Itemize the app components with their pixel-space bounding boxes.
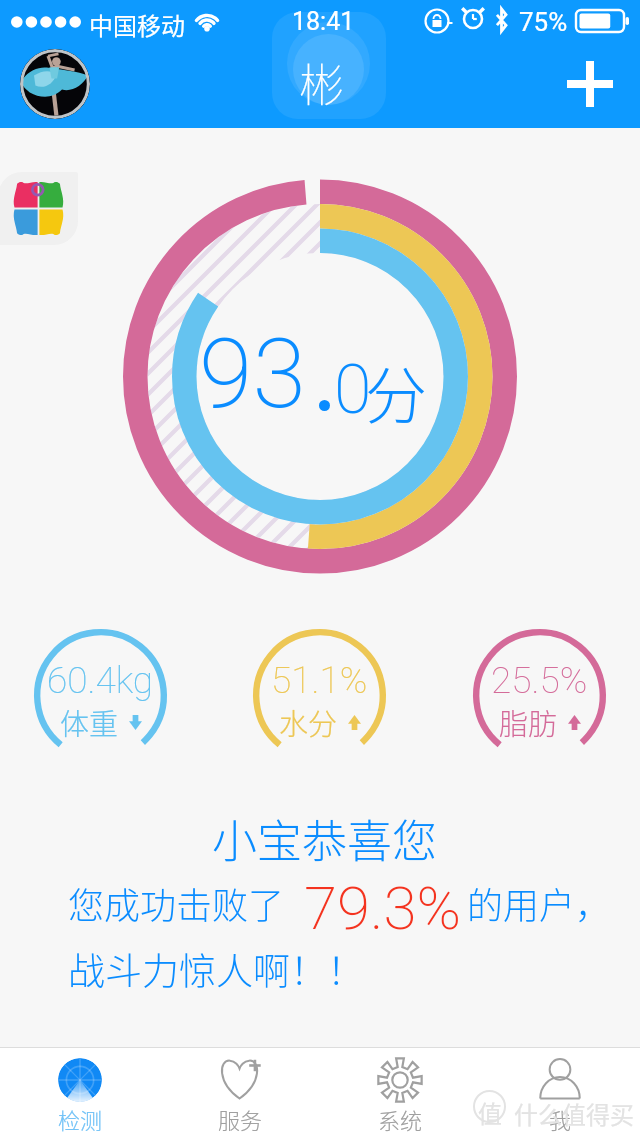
staticText: 体重	[60, 701, 119, 743]
staticText: 60.4kg	[47, 659, 154, 702]
button[interactable]: 彬	[272, 12, 386, 119]
button[interactable]: Brand logo	[0, 172, 78, 245]
staticText: 什么值得买	[514, 1096, 634, 1131]
staticText: 0	[334, 350, 372, 430]
staticText: 战斗力惊人啊！！	[68, 942, 364, 996]
staticText: 75%	[519, 7, 568, 37]
staticText: 的用户，	[467, 877, 612, 929]
staticText: 您成功击败了	[68, 877, 285, 929]
staticText: 51.1%	[271, 659, 368, 702]
staticText: 25.5%	[491, 659, 588, 702]
staticText: 检测	[58, 1103, 103, 1135]
staticText: 79.3%	[304, 873, 462, 943]
staticText: 脂肪	[499, 701, 558, 743]
staticText: 18:41	[292, 7, 355, 36]
button[interactable]: 检测	[0, 1048, 160, 1136]
button[interactable]: 系统	[320, 1048, 480, 1136]
staticText: 我	[549, 1103, 572, 1135]
staticText: 分	[365, 347, 428, 437]
staticText: 彬	[299, 50, 345, 115]
staticText: 中国移动	[89, 7, 185, 42]
button[interactable]: 51.1%	[253, 629, 386, 762]
staticText: 小宝恭喜您	[212, 806, 438, 871]
button[interactable]: 我	[480, 1048, 640, 1136]
button[interactable]: 服务	[160, 1048, 320, 1136]
button[interactable]: Add	[552, 46, 628, 122]
button[interactable]: Profile avatar	[20, 49, 90, 119]
staticText: 93	[199, 317, 306, 431]
staticText: 系统	[378, 1103, 423, 1135]
button[interactable]: 60.4kg	[34, 629, 167, 762]
button[interactable]: 25.5%	[473, 629, 606, 762]
staticText: 水分	[279, 701, 338, 743]
staticText: 服务	[218, 1103, 263, 1135]
staticText: 值	[478, 1095, 502, 1130]
